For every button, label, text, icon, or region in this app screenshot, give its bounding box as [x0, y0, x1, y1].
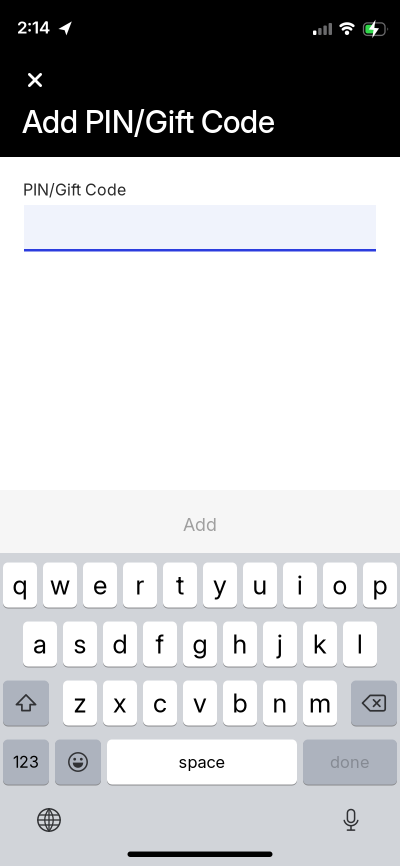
button[interactable]: p: [363, 562, 397, 608]
button[interactable]: v: [183, 680, 217, 726]
button[interactable]: Emoji: [55, 739, 101, 785]
button[interactable]: 123: [3, 739, 49, 785]
staticText: done: [330, 752, 370, 772]
button[interactable]: s: [63, 621, 97, 667]
staticText: i: [297, 569, 303, 601]
button[interactable]: Dictation: [329, 798, 373, 842]
staticText: j: [277, 628, 283, 660]
button[interactable]: Delete: [351, 680, 397, 726]
staticText: p: [372, 569, 387, 601]
staticText: q: [12, 569, 27, 601]
staticText: n: [272, 687, 287, 719]
button[interactable]: l: [343, 621, 377, 667]
staticText: x: [113, 687, 127, 719]
staticText: k: [313, 628, 327, 660]
staticText: f: [155, 628, 164, 660]
staticText: c: [153, 687, 167, 719]
staticText: d: [112, 628, 127, 660]
button[interactable]: Shift: [3, 680, 49, 726]
button[interactable]: d: [103, 621, 137, 667]
staticText: w: [50, 569, 70, 601]
button[interactable]: done: [303, 739, 397, 785]
staticText: e: [93, 569, 107, 601]
button[interactable]: Add: [0, 490, 400, 553]
button[interactable]: o: [323, 562, 357, 608]
button[interactable]: k: [303, 621, 337, 667]
staticText: v: [193, 687, 207, 719]
button[interactable]: z: [63, 680, 97, 726]
button[interactable]: f: [143, 621, 177, 667]
button[interactable]: u: [243, 562, 277, 608]
staticText: g: [192, 628, 207, 660]
button[interactable]: Close: [19, 64, 51, 96]
staticText: a: [33, 628, 47, 660]
button[interactable]: Next keyboard: [27, 798, 71, 842]
button[interactable]: y: [203, 562, 237, 608]
button[interactable]: m: [303, 680, 337, 726]
staticText: Add: [183, 514, 217, 535]
staticText: o: [332, 569, 347, 601]
staticText: 123: [13, 752, 39, 772]
button[interactable]: b: [223, 680, 257, 726]
button[interactable]: x: [103, 680, 137, 726]
staticText: l: [357, 628, 363, 660]
staticText: 2:14: [17, 17, 50, 38]
button[interactable]: i: [283, 562, 317, 608]
staticText: space: [178, 752, 225, 772]
staticText: y: [213, 569, 227, 601]
button[interactable]: q: [3, 562, 37, 608]
button[interactable]: r: [123, 562, 157, 608]
staticText: b: [232, 687, 247, 719]
staticText: PIN/Gift Code: [23, 180, 126, 199]
staticText: m: [309, 687, 331, 719]
button[interactable]: e: [83, 562, 117, 608]
staticText: s: [73, 628, 86, 660]
button[interactable]: space: [107, 739, 297, 785]
button[interactable]: c: [143, 680, 177, 726]
staticText: r: [135, 569, 144, 601]
button[interactable]: n: [263, 680, 297, 726]
staticText: z: [73, 687, 86, 719]
button[interactable]: PIN/Gift Code: [24, 205, 376, 251]
button[interactable]: t: [163, 562, 197, 608]
button[interactable]: h: [223, 621, 257, 667]
staticText: h: [232, 628, 247, 660]
button[interactable]: w: [43, 562, 77, 608]
staticText: Add PIN/Gift Code: [22, 103, 275, 140]
button[interactable]: g: [183, 621, 217, 667]
staticText: u: [252, 569, 267, 601]
staticText: t: [176, 569, 184, 601]
button[interactable]: a: [23, 621, 57, 667]
button[interactable]: j: [263, 621, 297, 667]
